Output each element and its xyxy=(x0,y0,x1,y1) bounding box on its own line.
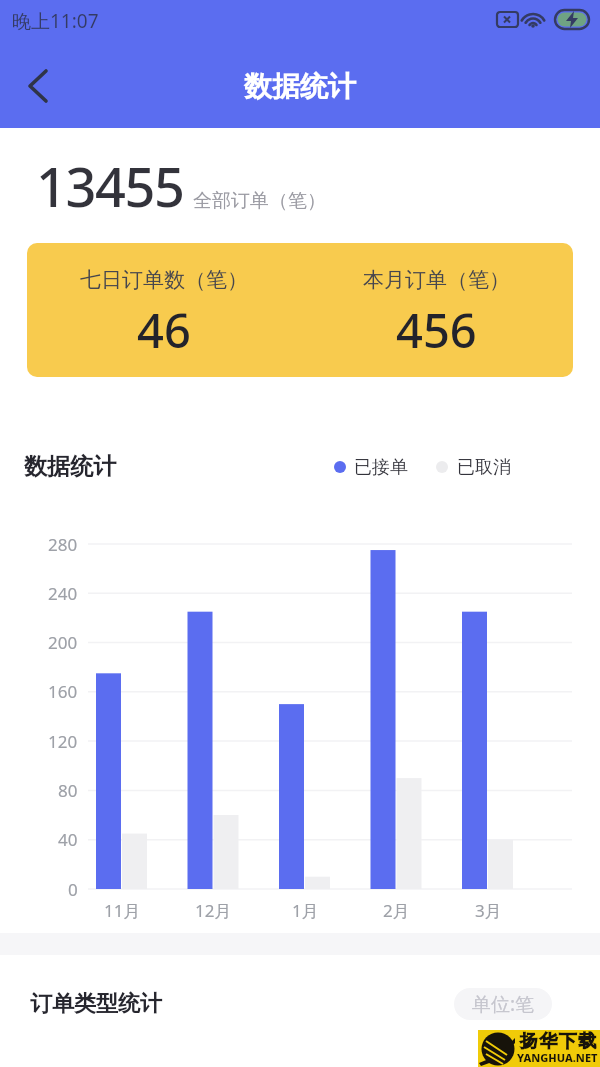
button[interactable] xyxy=(16,56,64,116)
staticText: 订单类型统计 xyxy=(30,990,162,1018)
staticText: 本月订单（笔） xyxy=(363,267,510,293)
staticText: 2月 xyxy=(383,899,410,921)
staticText: 80 xyxy=(58,779,78,801)
staticText: 七日订单数（笔） xyxy=(80,267,248,293)
staticText: 13455 xyxy=(36,149,184,223)
staticText: 120 xyxy=(48,730,78,752)
staticText: 160 xyxy=(48,680,78,702)
staticText: 200 xyxy=(48,631,78,653)
staticText: 11月 xyxy=(104,899,141,921)
staticText: 240 xyxy=(48,582,78,604)
staticText: 1月 xyxy=(292,899,319,921)
staticText: 12月 xyxy=(195,899,232,921)
staticText: YANGHUA.NET xyxy=(517,1050,598,1064)
staticText: 46 xyxy=(137,298,191,362)
staticText: 单位:笔 xyxy=(472,991,535,1017)
staticText: 扬华下载 xyxy=(519,1030,597,1053)
staticText: 280 xyxy=(48,533,78,555)
staticText: 456 xyxy=(396,298,477,362)
staticText: 数据统计 xyxy=(244,69,356,104)
staticText: 40 xyxy=(58,828,78,850)
staticText: 0 xyxy=(68,878,78,900)
staticText: 全部订单（笔） xyxy=(193,189,326,213)
staticText: 数据统计 xyxy=(24,452,116,481)
button[interactable]: 七日订单数（笔） xyxy=(27,243,573,377)
staticText: 晚上11:07 xyxy=(12,8,99,34)
staticText: 已取消 xyxy=(457,456,511,479)
staticText: 已接单 xyxy=(354,456,408,479)
staticText: 3月 xyxy=(475,899,502,921)
